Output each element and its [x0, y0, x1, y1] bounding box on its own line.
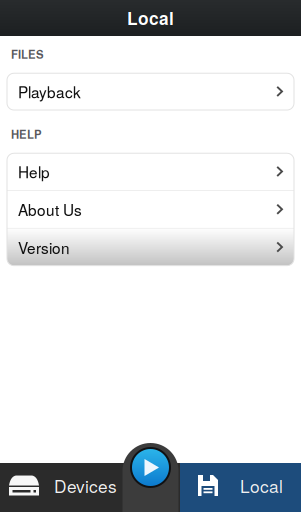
staticText: HELP	[11, 126, 42, 142]
staticText: Playback	[18, 81, 81, 103]
button[interactable]: Play	[122, 443, 178, 512]
button[interactable]: Playback	[7, 73, 294, 110]
staticText: About Us	[18, 198, 82, 220]
button[interactable]: Devices	[0, 463, 123, 512]
staticText: Version	[18, 236, 70, 258]
staticText: Devices	[54, 473, 117, 498]
button[interactable]: About Us	[7, 191, 294, 228]
button[interactable]: Help	[7, 153, 294, 190]
button[interactable]: Version	[7, 229, 294, 266]
staticText: Local	[240, 473, 283, 498]
staticText: Help	[18, 161, 50, 183]
button[interactable]: Local	[180, 463, 301, 512]
staticText: Local	[127, 6, 174, 30]
staticText: FILES	[11, 46, 44, 62]
